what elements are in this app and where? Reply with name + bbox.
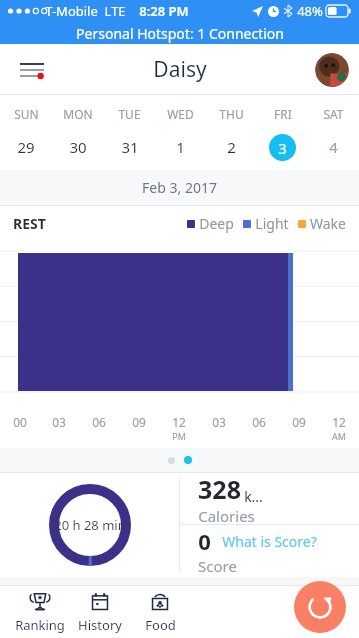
staticText: Personal Hotspot: 1 Connection [76, 24, 284, 43]
staticText: WED [167, 106, 194, 122]
staticText: Score [198, 556, 237, 576]
button[interactable]: 1 [155, 132, 206, 162]
button[interactable]: 30 [52, 132, 104, 162]
staticText: History [78, 616, 122, 634]
staticText: 00 [13, 414, 27, 430]
button[interactable]: 3 [257, 132, 308, 162]
button[interactable]: Profile [315, 53, 349, 87]
staticText: REST [13, 214, 46, 233]
staticText: Light [255, 214, 289, 233]
staticText: LTE [104, 2, 126, 20]
staticText: 29 [17, 137, 35, 157]
staticText: 09 [292, 414, 306, 430]
staticText: Calories [198, 506, 255, 524]
staticText: Feb 3, 2017 [142, 178, 217, 197]
staticText: Deep [199, 214, 234, 233]
staticText: 1 [176, 137, 185, 157]
button[interactable]: Refresh [294, 581, 346, 633]
staticText: THU [219, 106, 244, 122]
button[interactable]: 31 [104, 132, 155, 162]
button[interactable]: Ranking [10, 585, 70, 638]
button[interactable]: 0 [180, 525, 359, 577]
button[interactable]: History [70, 585, 130, 638]
staticText: SUN [14, 106, 39, 122]
staticText: 328 [198, 472, 241, 506]
staticText: 06 [92, 414, 106, 430]
staticText: Food [145, 616, 176, 634]
staticText: Ranking [15, 616, 65, 634]
staticText: 48% [297, 2, 323, 20]
button[interactable]: Menu [8, 46, 56, 94]
staticText: k... [244, 487, 263, 506]
button[interactable]: 29 [0, 132, 52, 162]
staticText: T-Mobile [45, 2, 98, 20]
staticText: 20 h 28 min [54, 516, 126, 534]
staticText: 2 [227, 137, 236, 157]
button[interactable]: 328 [180, 472, 359, 524]
staticText: 0 [198, 526, 211, 556]
staticText: FRI [274, 106, 292, 122]
staticText: 03 [212, 414, 226, 430]
staticText: TUE [118, 106, 141, 122]
button[interactable]: 4 [308, 132, 359, 162]
staticText: 03 [52, 414, 66, 430]
staticText: 31 [121, 137, 139, 157]
staticText: 4 [329, 137, 338, 157]
button[interactable]: 2 [206, 132, 257, 162]
staticText: What is Score? [222, 532, 317, 551]
staticText: Daisy [153, 55, 207, 84]
staticText: 8:28 PM [139, 2, 189, 20]
button[interactable]: 20 h 28 min [0, 472, 179, 577]
staticText: MON [63, 106, 93, 122]
staticText: PM [172, 430, 186, 442]
staticText: 12 [172, 414, 186, 430]
staticText: 12 [332, 414, 346, 430]
button[interactable]: Food [130, 585, 190, 638]
staticText: 30 [69, 137, 87, 157]
staticText: Wake [310, 214, 346, 233]
staticText: 06 [252, 414, 266, 430]
staticText: 3 [278, 138, 287, 158]
staticText: AM [332, 430, 346, 442]
staticText: SAT [323, 106, 344, 122]
staticText: 09 [132, 414, 146, 430]
